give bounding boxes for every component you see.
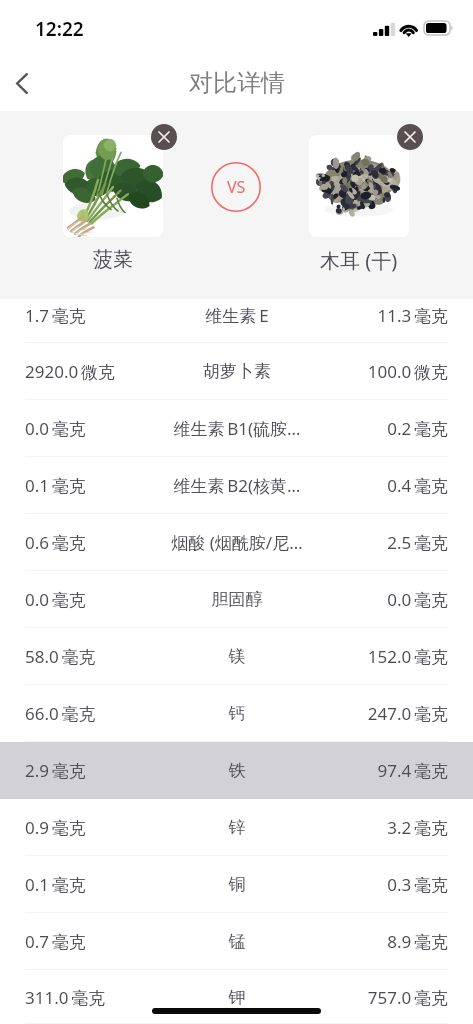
button[interactable]: 0.0 毫克 (0, 571, 473, 628)
staticText: 钾 (157, 987, 317, 1008)
staticText: 维生素 B2(核黄… (157, 474, 317, 497)
button[interactable]: 58.0 毫克 (0, 628, 473, 685)
staticText: VS (227, 176, 246, 198)
staticText: 66.0 毫克 (25, 702, 157, 725)
staticText: 铁 (157, 760, 317, 781)
staticText: 0.1 毫克 (25, 474, 157, 497)
staticText: 12:22 (35, 16, 84, 42)
staticText: 钙 (157, 703, 317, 724)
staticText: 1.7 毫克 (25, 304, 157, 327)
staticText: 0.4 毫克 (317, 474, 448, 497)
button[interactable]: Remove 菠菜 (151, 124, 177, 150)
staticText: 胆固醇 (157, 589, 317, 610)
staticText: 烟酸 (烟酰胺/尼… (157, 531, 317, 554)
staticText: 对比详情 (189, 68, 285, 98)
staticText: 0.7 毫克 (25, 930, 157, 953)
staticText: 757.0 毫克 (317, 986, 448, 1009)
staticText: 维生素 B1(硫胺… (157, 417, 317, 440)
staticText: 2920.0 微克 (25, 360, 157, 383)
staticText: 0.3 毫克 (317, 873, 448, 896)
staticText: 97.4 毫克 (317, 759, 448, 782)
staticText: 0.0 毫克 (25, 588, 157, 611)
staticText: 锰 (157, 931, 317, 952)
staticText: 100.0 微克 (317, 360, 448, 383)
button[interactable]: 0.6 毫克 (0, 514, 473, 571)
button[interactable]: 0.1 毫克 (0, 856, 473, 913)
staticText: 2.9 毫克 (25, 759, 157, 782)
staticText: 胡萝卜素 (157, 361, 317, 382)
staticText: 0.6 毫克 (25, 531, 157, 554)
staticText: 11.3 毫克 (317, 304, 448, 327)
button[interactable]: 2.9 毫克 (0, 742, 473, 799)
staticText: 8.9 毫克 (317, 930, 448, 953)
button[interactable]: 311.0 毫克 (0, 970, 473, 1024)
staticText: 菠菜 (93, 247, 133, 272)
staticText: 0.0 毫克 (25, 417, 157, 440)
staticText: 0.1 毫克 (25, 873, 157, 896)
button[interactable]: 0.1 毫克 (0, 457, 473, 514)
staticText: 木耳 (干) (320, 247, 398, 274)
staticText: 镁 (157, 646, 317, 667)
staticText: 58.0 毫克 (25, 645, 157, 668)
staticText: 0.0 毫克 (317, 588, 448, 611)
button[interactable]: 1.7 毫克 (0, 299, 473, 343)
staticText: 0.2 毫克 (317, 417, 448, 440)
button[interactable]: 2920.0 微克 (0, 343, 473, 400)
staticText: 3.2 毫克 (317, 816, 448, 839)
staticText: 锌 (157, 817, 317, 838)
button[interactable]: 66.0 毫克 (0, 685, 473, 742)
staticText: 维生素 E (157, 304, 317, 327)
button[interactable]: Back (1, 62, 43, 104)
button[interactable]: 0.9 毫克 (0, 799, 473, 856)
staticText: 0.9 毫克 (25, 816, 157, 839)
button[interactable]: 0.7 毫克 (0, 913, 473, 970)
staticText: 2.5 毫克 (317, 531, 448, 554)
staticText: 247.0 毫克 (317, 702, 448, 725)
staticText: 152.0 毫克 (317, 645, 448, 668)
button[interactable]: Remove 木耳 (干) (397, 124, 423, 150)
staticText: 铜 (157, 874, 317, 895)
button[interactable]: 0.0 毫克 (0, 400, 473, 457)
staticText: 311.0 毫克 (25, 986, 157, 1009)
